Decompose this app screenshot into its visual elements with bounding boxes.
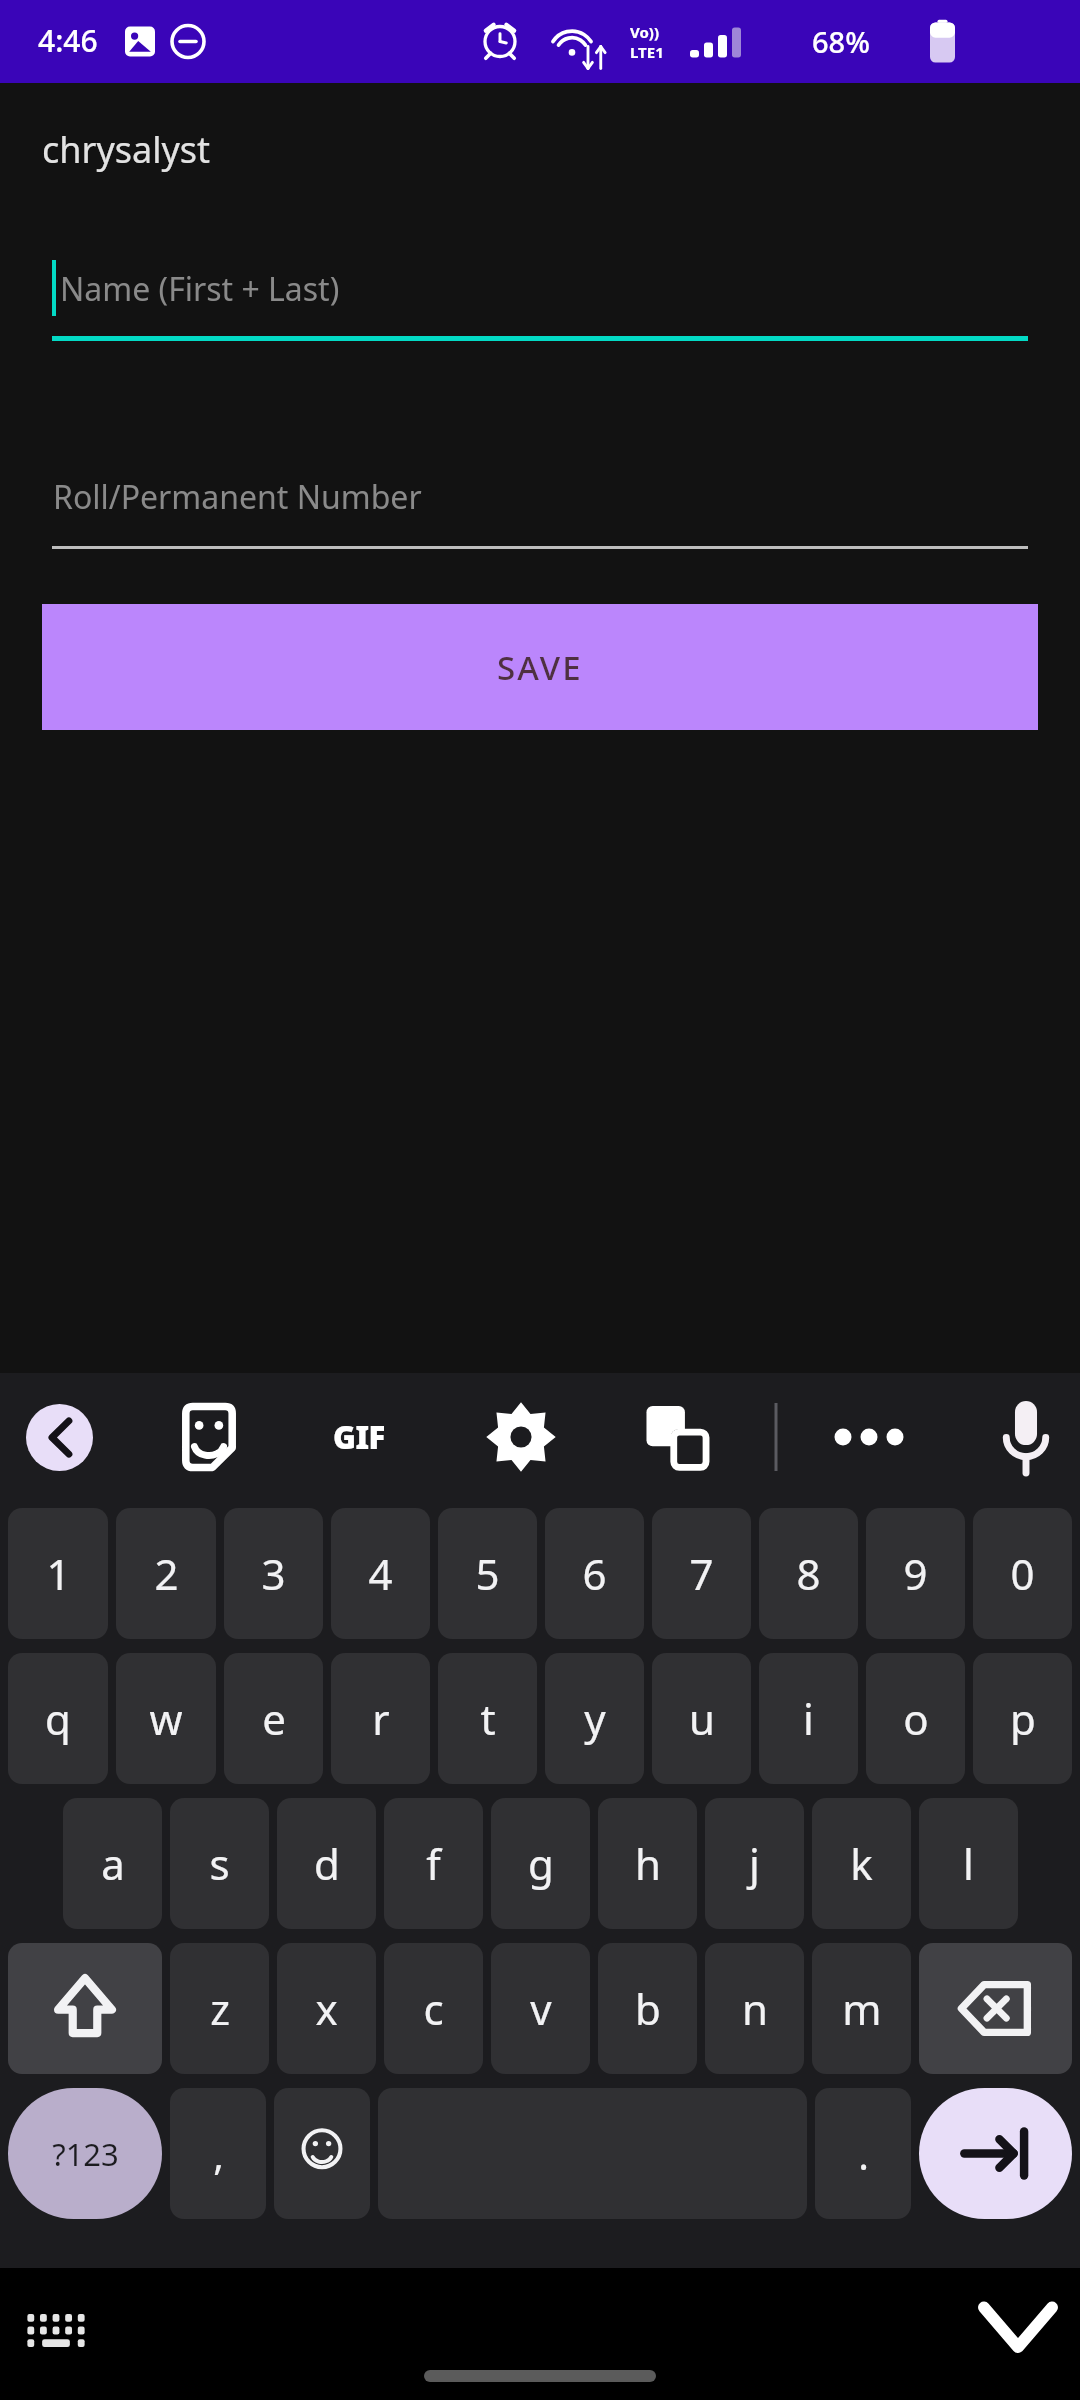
button[interactable]: Backspace <box>919 1943 1072 2074</box>
button[interactable]: Voice input <box>992 1403 1060 1471</box>
staticText: GIF <box>333 1416 385 1458</box>
button[interactable]: s <box>170 1798 269 1929</box>
button[interactable]: v <box>491 1943 590 2074</box>
button[interactable]: 6 <box>545 1508 644 1639</box>
button[interactable]: Switch keyboard <box>20 2298 92 2370</box>
staticText: . <box>858 2127 869 2181</box>
button[interactable]: Enter <box>919 2088 1072 2219</box>
button[interactable]: ?123 <box>8 2088 162 2219</box>
button[interactable]: Stickers <box>175 1403 243 1471</box>
button[interactable]: , <box>170 2088 266 2219</box>
staticText: f <box>426 1835 441 1892</box>
staticText: 4 <box>368 1545 393 1602</box>
staticText: a <box>101 1835 125 1892</box>
staticText: z <box>210 1980 230 2037</box>
staticText: 4:46 <box>38 20 98 61</box>
staticText: 6 <box>582 1545 607 1602</box>
staticText: 68% <box>812 22 870 61</box>
staticText: 8 <box>796 1545 821 1602</box>
button[interactable]: SAVE <box>42 604 1038 730</box>
button[interactable]: c <box>384 1943 483 2074</box>
button[interactable]: 4 <box>331 1508 430 1639</box>
button[interactable]: More options <box>835 1403 903 1471</box>
staticText: Vo)) <box>630 22 659 42</box>
button[interactable]: Name (First + Last) <box>52 246 1028 341</box>
button[interactable]: u <box>652 1653 751 1784</box>
button[interactable]: d <box>277 1798 376 1929</box>
button[interactable]: . <box>815 2088 911 2219</box>
staticText: l <box>963 1835 974 1892</box>
button[interactable]: a <box>63 1798 162 1929</box>
staticText: g <box>528 1835 554 1892</box>
button[interactable]: 0 <box>973 1508 1072 1639</box>
staticText: o <box>903 1690 929 1747</box>
staticText: 1 <box>46 1545 71 1602</box>
button[interactable]: Settings <box>487 1403 555 1471</box>
button[interactable]: Back <box>26 1404 93 1471</box>
staticText: v <box>530 1980 552 2037</box>
button[interactable]: z <box>170 1943 269 2074</box>
staticText: q <box>45 1690 71 1747</box>
staticText: LTE1 <box>630 42 664 62</box>
staticText: i <box>803 1690 814 1747</box>
staticText: 5 <box>475 1545 500 1602</box>
button[interactable]: GIF <box>330 1403 398 1471</box>
button[interactable]: f <box>384 1798 483 1929</box>
button[interactable]: 5 <box>438 1508 537 1639</box>
button[interactable]: n <box>705 1943 804 2074</box>
button[interactable]: k <box>812 1798 911 1929</box>
button[interactable]: e <box>224 1653 323 1784</box>
staticText: c <box>423 1980 444 2037</box>
button[interactable]: 9 <box>866 1508 965 1639</box>
staticText: e <box>262 1690 286 1747</box>
button[interactable]: 7 <box>652 1508 751 1639</box>
button[interactable]: m <box>812 1943 911 2074</box>
button[interactable]: w <box>116 1653 216 1784</box>
staticText: 0 <box>1010 1545 1035 1602</box>
button[interactable]: i <box>759 1653 858 1784</box>
staticText: Name (First + Last) <box>60 267 340 311</box>
staticText: chrysalyst <box>42 125 211 174</box>
button[interactable]: 8 <box>759 1508 858 1639</box>
staticText: Roll/Permanent Number <box>53 475 422 519</box>
button[interactable]: p <box>973 1653 1072 1784</box>
button[interactable]: Roll/Permanent Number <box>52 454 1028 549</box>
staticText: x <box>315 1980 338 2037</box>
button[interactable]: h <box>598 1798 697 1929</box>
button[interactable]: 3 <box>224 1508 323 1639</box>
staticText: r <box>372 1690 390 1747</box>
staticText: j <box>749 1835 760 1892</box>
staticText: m <box>842 1980 882 2037</box>
button[interactable]: 1 <box>8 1508 108 1639</box>
staticText: 9 <box>903 1545 928 1602</box>
staticText: ?123 <box>52 2133 119 2175</box>
button[interactable]: x <box>277 1943 376 2074</box>
button[interactable]: r <box>331 1653 430 1784</box>
button[interactable]: Shift <box>8 1943 162 2074</box>
staticText: t <box>480 1690 496 1747</box>
button[interactable]: 2 <box>116 1508 216 1639</box>
staticText: h <box>635 1835 661 1892</box>
staticText: b <box>635 1980 661 2037</box>
button[interactable]: t <box>438 1653 537 1784</box>
button[interactable]: o <box>866 1653 965 1784</box>
staticText: , <box>213 2127 224 2181</box>
staticText: p <box>1010 1690 1036 1747</box>
button[interactable]: y <box>545 1653 644 1784</box>
staticText: y <box>584 1690 606 1747</box>
button[interactable]: Translate <box>641 1403 709 1471</box>
staticText: 2 <box>154 1545 179 1602</box>
button[interactable]: l <box>919 1798 1018 1929</box>
button[interactable]: q <box>8 1653 108 1784</box>
button[interactable]: g <box>491 1798 590 1929</box>
staticText: s <box>209 1835 230 1892</box>
button[interactable]: b <box>598 1943 697 2074</box>
staticText: n <box>742 1980 768 2037</box>
staticText: 3 <box>261 1545 286 1602</box>
staticText: k <box>850 1835 873 1892</box>
staticText: 7 <box>689 1545 714 1602</box>
button[interactable]: j <box>705 1798 804 1929</box>
button[interactable]: Hide keyboard <box>976 2292 1060 2376</box>
button[interactable]: Emoji <box>274 2088 370 2219</box>
